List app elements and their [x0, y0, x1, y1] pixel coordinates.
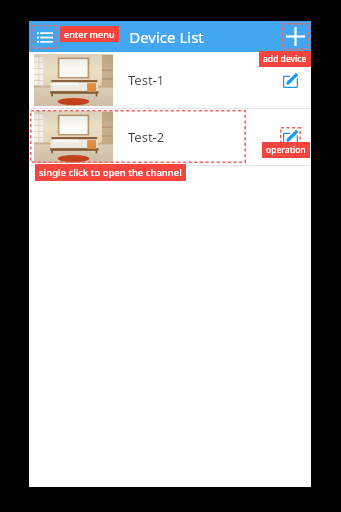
button[interactable]: Edit device Test-2	[275, 122, 305, 152]
staticText: Device List	[129, 27, 204, 47]
staticText: Test-1	[128, 71, 165, 89]
staticText: operation	[266, 144, 306, 156]
button[interactable]: Test-1	[29, 52, 311, 108]
staticText: add device	[263, 53, 307, 65]
staticText: Test-2	[128, 128, 165, 146]
staticText: enter menu	[64, 28, 115, 40]
button[interactable]: Edit device Test-1	[275, 65, 305, 95]
button[interactable]: Add device	[282, 23, 309, 50]
staticText: single click to open the channel	[39, 166, 182, 179]
button[interactable]: Test-2	[29, 109, 311, 165]
button[interactable]: Enter menu	[31, 25, 58, 49]
